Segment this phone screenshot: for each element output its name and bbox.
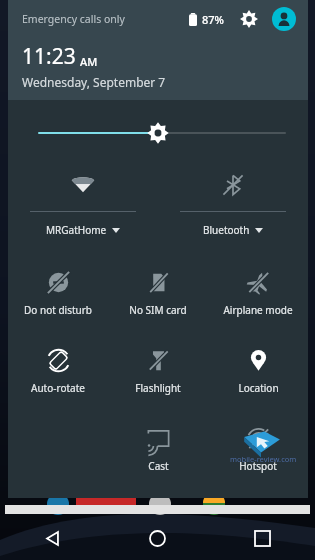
button[interactable]: Auto-rotate (8, 333, 108, 411)
staticText: Flashlight (135, 381, 181, 395)
staticText: Location (238, 381, 279, 395)
button[interactable]: User profile (272, 7, 296, 31)
button[interactable]: Bluetooth (158, 155, 308, 255)
staticText: AM (80, 54, 98, 69)
button[interactable]: Brightness (8, 122, 308, 156)
button[interactable]: Home (105, 516, 210, 560)
staticText: Cast (148, 459, 169, 473)
button[interactable]: Recent apps (210, 516, 315, 560)
button[interactable]: Cast (108, 411, 208, 489)
staticText: Wednesday, September 7 (22, 74, 166, 90)
staticText: Auto-rotate (31, 381, 85, 395)
staticText: Hotspot (239, 459, 277, 473)
button[interactable]: Back (0, 516, 105, 560)
button[interactable]: Airplane mode (208, 255, 308, 333)
staticText: mobile-review.com (230, 454, 297, 464)
button[interactable]: Do not disturb (8, 255, 108, 333)
button[interactable]: Location (208, 333, 308, 411)
staticText: Emergency calls only (22, 12, 125, 26)
button[interactable]: Hotspot (208, 411, 308, 489)
button[interactable]: Settings (238, 8, 260, 30)
staticText: Airplane mode (223, 303, 293, 317)
staticText: 87% (202, 12, 224, 27)
button[interactable]: MRGatHome (8, 155, 158, 255)
staticText: MRGatHome (46, 223, 107, 237)
staticText: 11:23 (22, 42, 76, 71)
button[interactable]: No SIM card (108, 255, 208, 333)
staticText: Do not disturb (24, 303, 92, 317)
staticText: No SIM card (129, 303, 187, 317)
staticText: Bluetooth (203, 223, 250, 237)
button[interactable]: Flashlight (108, 333, 208, 411)
